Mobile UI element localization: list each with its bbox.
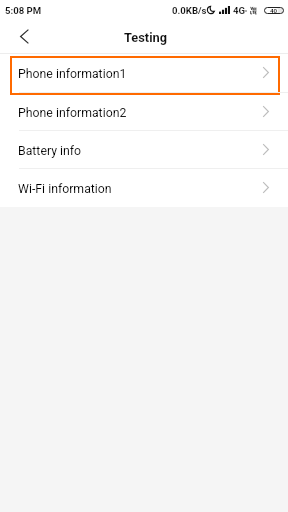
staticText: 5:08 PM (5, 5, 42, 16)
button[interactable]: Phone information1 (0, 53, 288, 92)
staticText: Phone information2 (18, 106, 263, 120)
button[interactable]: Phone information2 (0, 92, 288, 131)
staticText: 4G (233, 5, 246, 16)
staticText: Wi-Fi information (18, 182, 263, 196)
staticText: Phone information1 (18, 67, 263, 81)
staticText: 40 (270, 7, 278, 14)
button[interactable]: Back (0, 20, 48, 52)
button[interactable]: Battery info (0, 130, 288, 169)
staticText: Battery info (18, 144, 263, 158)
button[interactable]: Wi-Fi information (0, 168, 288, 207)
staticText: Testing (124, 30, 168, 45)
staticText: 0.0KB/s (172, 5, 207, 16)
